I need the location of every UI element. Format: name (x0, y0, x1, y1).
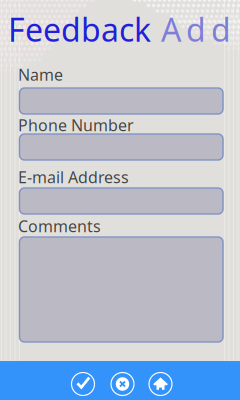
staticText: Comments (18, 215, 101, 237)
button[interactable]: Cancel (108, 370, 136, 398)
staticText: Add (161, 8, 231, 50)
button[interactable]: Save (69, 370, 97, 398)
staticText: Feedback (8, 8, 151, 50)
staticText: Name (18, 64, 63, 85)
staticText: E-mail Address (18, 166, 129, 188)
button[interactable]: Home (146, 370, 174, 398)
staticText: Phone Number (18, 114, 134, 136)
